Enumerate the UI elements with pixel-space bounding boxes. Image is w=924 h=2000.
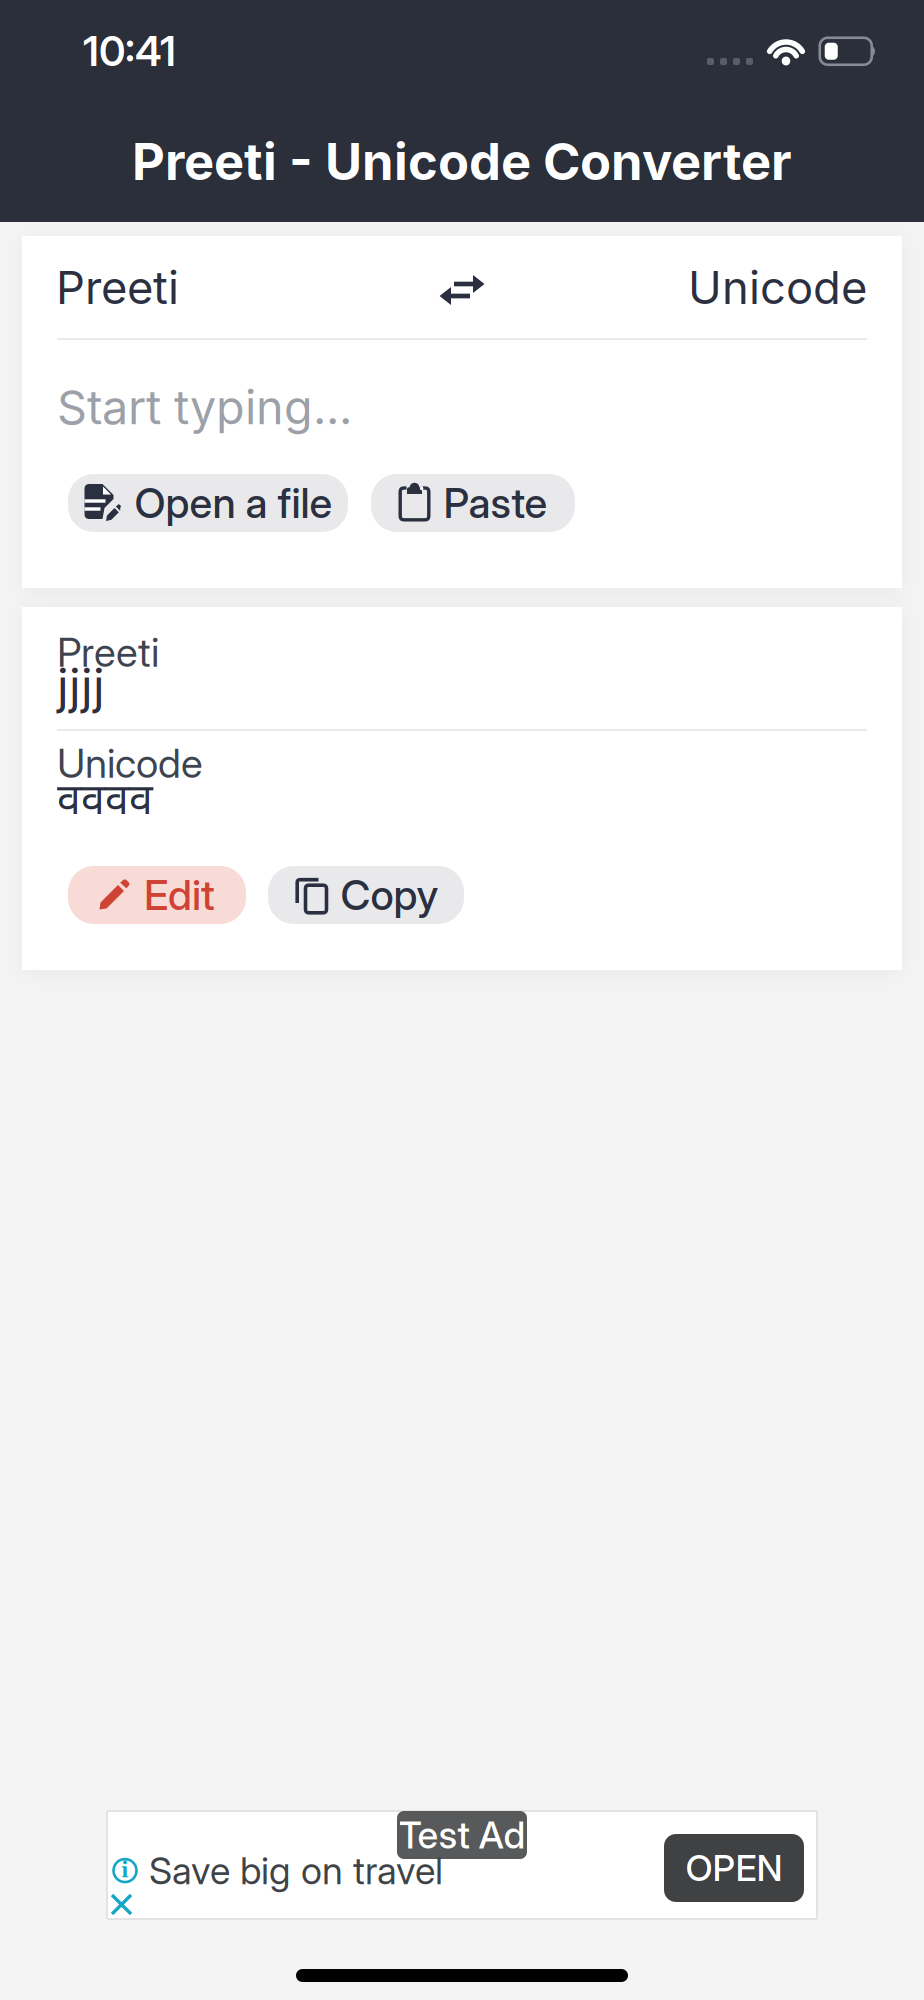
staticText: jjjj [57, 657, 105, 715]
staticText: 10:41 [83, 26, 176, 76]
staticText: Open a file [134, 478, 332, 528]
staticText: Copy [340, 870, 438, 920]
staticText: Unicode [688, 260, 867, 315]
staticText: Preeti [56, 260, 179, 315]
button[interactable]: About this ad [113, 1859, 137, 1883]
staticText: Save big on travel [149, 1848, 443, 1893]
staticText: Preeti - Unicode Converter [132, 131, 792, 192]
button[interactable]: Edit [68, 866, 246, 924]
button[interactable]: Paste [371, 474, 575, 532]
button[interactable]: Close ad [110, 1893, 133, 1916]
button[interactable]: OPEN [664, 1834, 804, 1902]
staticText: Paste [443, 478, 547, 528]
staticText: वववव [57, 776, 153, 832]
button[interactable]: Copy [268, 866, 464, 924]
staticText: Preeti [57, 628, 159, 676]
staticText: i [121, 1857, 129, 1885]
button[interactable]: Swap conversion direction [439, 275, 485, 305]
staticText: Test Ad [398, 1812, 525, 1858]
staticText: Unicode [57, 739, 203, 787]
button[interactable]: Open a file [68, 474, 348, 532]
staticText: Start typing... [57, 379, 352, 435]
staticText: Edit [144, 870, 215, 920]
staticText: OPEN [685, 1846, 782, 1890]
